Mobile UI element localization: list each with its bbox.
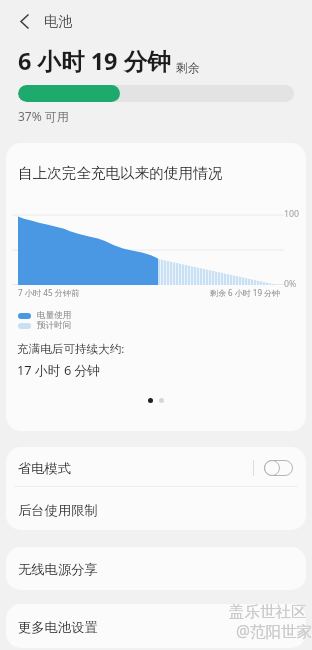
button[interactable]: 无线电源分享 — [6, 547, 306, 590]
staticText: 盖乐世社区 — [229, 602, 307, 622]
staticText: 电池 — [44, 13, 72, 31]
button[interactable]: 省电模式 — [6, 447, 306, 488]
staticText: 37% 可用 — [18, 108, 69, 124]
staticText: 17 小时 6 分钟 — [17, 361, 101, 378]
staticText: 100 — [284, 208, 300, 220]
staticText: 后台使用限制 — [18, 502, 98, 519]
staticText: 6 小时 19 分钟 — [18, 45, 171, 77]
staticText: 剩余 6 小时 19 分钟 — [210, 287, 281, 298]
button[interactable]: 更多电池设置 — [6, 604, 306, 648]
button[interactable]: Power saving mode toggle — [264, 460, 293, 476]
staticText: 自上次完全充电以来的使用情况 — [18, 164, 223, 182]
staticText: @范阳世家 — [236, 620, 312, 641]
button[interactable]: 后台使用限制 — [6, 488, 306, 530]
staticText: 7 小时 45 分钟前 — [18, 287, 80, 298]
staticText: 电量使用 — [37, 310, 72, 321]
staticText: 省电模式 — [18, 460, 72, 477]
staticText: 更多电池设置 — [18, 619, 98, 636]
staticText: 剩余 — [176, 60, 200, 75]
staticText: 0% — [284, 278, 297, 290]
staticText: 无线电源分享 — [18, 561, 98, 578]
staticText: 充满电后可持续大约: — [17, 341, 125, 357]
staticText: 预计时间 — [37, 320, 72, 331]
button[interactable]: Back — [8, 5, 40, 37]
